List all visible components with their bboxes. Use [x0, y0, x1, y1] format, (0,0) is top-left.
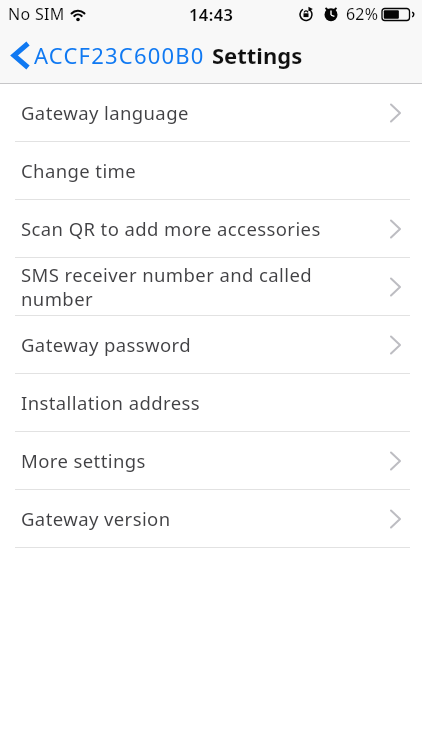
- staticText: Gateway language: [21, 100, 389, 125]
- staticText: Change time: [21, 158, 402, 183]
- staticText: 62%: [346, 3, 379, 25]
- button[interactable]: More settings: [0, 432, 422, 490]
- button[interactable]: SMS receiver number and called number: [0, 258, 422, 316]
- button[interactable]: Change time: [0, 142, 422, 200]
- staticText: Scan QR to add more accessories: [21, 216, 389, 241]
- staticText: More settings: [21, 448, 389, 473]
- staticText: ACCF23C600B0: [34, 40, 205, 70]
- button[interactable]: Installation address: [0, 374, 422, 432]
- staticText: SMS receiver number and called number: [21, 262, 389, 311]
- button[interactable]: ACCF23C600B0: [0, 40, 205, 70]
- button[interactable]: Gateway password: [0, 316, 422, 374]
- button[interactable]: Gateway version: [0, 490, 422, 548]
- button[interactable]: Gateway language: [0, 84, 422, 142]
- staticText: No SIM: [8, 3, 65, 25]
- staticText: Gateway password: [21, 332, 389, 357]
- button[interactable]: Scan QR to add more accessories: [0, 200, 422, 258]
- staticText: 14:43: [189, 3, 234, 25]
- staticText: Settings: [212, 40, 303, 70]
- staticText: Installation address: [21, 390, 402, 415]
- staticText: Gateway version: [21, 506, 389, 531]
